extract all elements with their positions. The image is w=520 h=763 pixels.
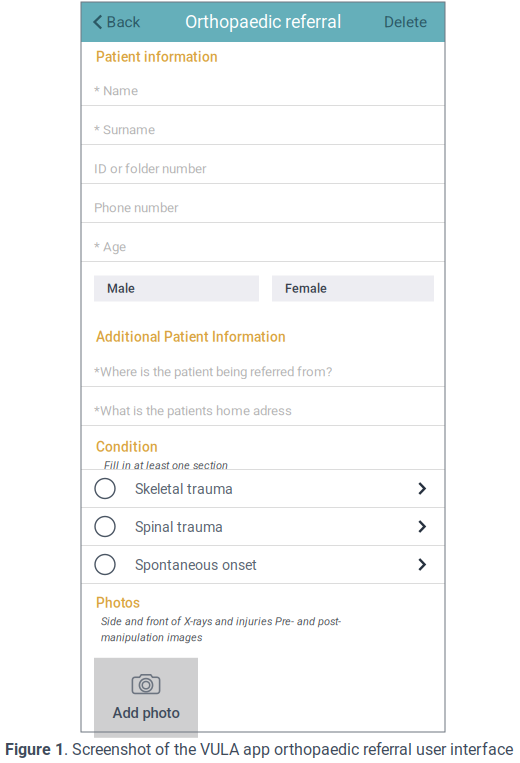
staticText: Spinal trauma — [135, 519, 223, 536]
staticText: Female — [285, 281, 327, 296]
staticText: Add photo — [112, 704, 179, 722]
staticText: *Where is the patient being referred fro… — [94, 364, 332, 379]
staticText: . Screenshot of the VULA app orthopaedic… — [64, 740, 513, 759]
staticText: Male — [107, 281, 135, 296]
staticText: Fill in at least one section — [104, 459, 228, 472]
staticText: ID or folder number — [94, 161, 206, 176]
staticText: Patient information — [96, 49, 218, 65]
staticText: Spontaneous onset — [135, 557, 257, 574]
button[interactable]: Female — [272, 275, 434, 301]
staticText: Orthopaedic referral — [185, 11, 341, 32]
staticText: * Age — [94, 239, 126, 254]
button[interactable]: Delete — [384, 2, 445, 42]
button[interactable]: Male — [94, 275, 259, 301]
staticText: Figure 1 — [5, 740, 64, 759]
staticText: Condition — [96, 439, 158, 455]
staticText: Side and front of X-rays and injuries Pr… — [101, 615, 341, 628]
staticText: Photos — [96, 595, 140, 611]
staticText: Phone number — [94, 200, 178, 215]
staticText: * Surname — [94, 122, 155, 137]
button[interactable]: Spontaneous onset — [81, 546, 445, 583]
button[interactable]: Skeletal trauma — [81, 470, 445, 507]
button[interactable]: Spinal trauma — [81, 508, 445, 545]
staticText: Back — [107, 13, 141, 31]
staticText: Skeletal trauma — [135, 481, 233, 498]
button[interactable]: Add photo — [94, 658, 198, 738]
staticText: manipulation images — [101, 631, 202, 644]
button[interactable]: Back — [81, 2, 141, 42]
staticText: Delete — [384, 13, 427, 31]
staticText: * Name — [94, 83, 138, 98]
staticText: *What is the patients home adress — [94, 403, 292, 418]
staticText: Additional Patient Information — [96, 329, 286, 345]
